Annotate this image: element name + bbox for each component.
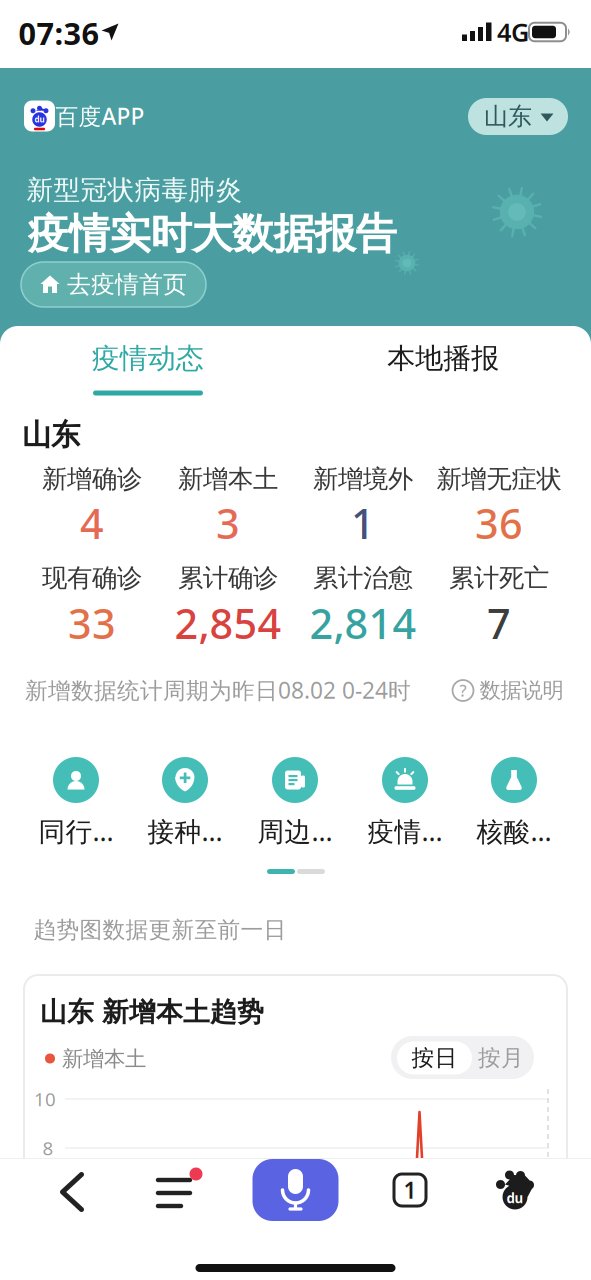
staticText: 8 [42, 1136, 53, 1160]
staticText: 累计死亡 [449, 562, 549, 593]
staticText: du [34, 114, 44, 125]
button[interactable]: ? [445, 674, 569, 706]
button[interactable]: Voice search [252, 1159, 338, 1221]
staticText: 新增境外 [313, 463, 413, 494]
staticText: 07:36 [18, 13, 99, 53]
staticText: 山东 [22, 417, 80, 453]
staticText: 新增本土 [178, 463, 278, 494]
staticText: 趋势图数据更新至前一日 [33, 916, 286, 944]
staticText: 数据说明 [479, 677, 563, 704]
staticText: 新型冠状病毒肺炎 [26, 174, 242, 206]
button[interactable]: 去疫情首页 [21, 262, 206, 307]
staticText: 按日 [411, 1044, 457, 1072]
staticText: 山东 新增本土趋势 [40, 996, 264, 1028]
staticText: 累计确诊 [178, 562, 278, 593]
staticText: 1 [351, 496, 375, 550]
staticText: 7 [487, 596, 511, 650]
staticText: 周边... [257, 813, 332, 849]
staticText: 新增确诊 [42, 463, 142, 494]
staticText: du [506, 1189, 523, 1207]
button[interactable]: 接种... [134, 756, 236, 850]
staticText: 疫情实时大数据报告 [27, 209, 396, 259]
button[interactable]: 周边... [244, 756, 346, 850]
button[interactable]: Menu [150, 1163, 210, 1219]
staticText: 新增无症状 [436, 463, 561, 494]
button[interactable]: Baidu home [487, 1162, 543, 1218]
staticText: 疫情动态 [92, 341, 204, 376]
staticText: 3 [216, 496, 240, 550]
staticText: 本地播报 [387, 341, 499, 376]
staticText: 4 [80, 496, 104, 550]
staticText: 36 [475, 496, 523, 550]
staticText: 累计治愈 [313, 562, 413, 593]
staticText: 去疫情首页 [67, 270, 187, 299]
staticText: 10 [34, 1087, 56, 1111]
staticText: 4G [497, 15, 529, 49]
staticText: 1 [403, 1175, 416, 1205]
staticText: 33 [68, 596, 116, 650]
staticText: 山东 [484, 102, 532, 131]
button[interactable]: 核酸... [463, 756, 565, 850]
button[interactable]: Back [44, 1164, 100, 1220]
button[interactable]: 本地播报 [296, 329, 591, 387]
staticText: 同行... [38, 813, 113, 849]
button[interactable]: 按月 [472, 1041, 530, 1074]
button[interactable]: 按日 [397, 1041, 472, 1074]
staticText: 新增本土 [62, 1046, 146, 1072]
staticText: 按月 [478, 1044, 524, 1072]
staticText: ? [459, 680, 466, 701]
staticText: 疫情... [367, 813, 442, 849]
button[interactable]: 山东 [468, 98, 568, 135]
button[interactable]: 疫情动态 [0, 329, 295, 387]
staticText: 接种... [147, 813, 222, 849]
staticText: 核酸... [476, 813, 551, 849]
staticText: 2,854 [174, 596, 281, 650]
staticText: 2,814 [309, 596, 416, 650]
staticText: 百度APP [55, 101, 144, 131]
button[interactable]: 疫情... [354, 756, 456, 850]
staticText: 现有确诊 [42, 562, 142, 593]
button[interactable]: Tabs [382, 1162, 438, 1218]
staticText: 新增数据统计周期为昨日08.02 0-24时 [25, 675, 411, 705]
button[interactable]: 同行... [25, 756, 127, 850]
